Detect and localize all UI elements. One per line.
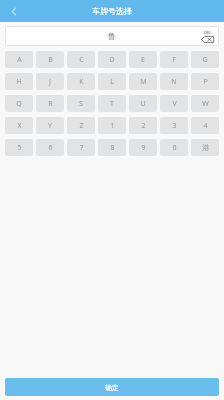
button[interactable]: W: [191, 95, 219, 112]
button[interactable]: Q: [5, 95, 33, 112]
button[interactable]: Delete: [198, 27, 216, 45]
button[interactable]: 6: [36, 139, 64, 156]
staticText: G: [202, 55, 208, 65]
staticText: 6: [48, 143, 53, 153]
staticText: 0: [172, 143, 177, 153]
button[interactable]: G: [191, 51, 219, 68]
staticText: 9: [141, 143, 146, 153]
staticText: C: [79, 55, 84, 65]
button[interactable]: 0: [160, 139, 188, 156]
button[interactable]: F: [160, 51, 188, 68]
staticText: W: [202, 99, 209, 109]
staticText: 7: [79, 143, 84, 153]
button[interactable]: T: [98, 95, 126, 112]
staticText: 1: [110, 121, 115, 131]
staticText: R: [48, 99, 53, 109]
staticText: 鲁: [108, 31, 116, 41]
button[interactable]: 3: [160, 117, 188, 134]
button[interactable]: J: [36, 73, 64, 90]
button[interactable]: S: [67, 95, 95, 112]
staticText: B: [48, 55, 53, 65]
staticText: A: [17, 55, 22, 65]
staticText: M: [140, 77, 147, 87]
button[interactable]: M: [129, 73, 157, 90]
staticText: 车牌号选择: [92, 6, 132, 16]
button[interactable]: D: [98, 51, 126, 68]
button[interactable]: E: [129, 51, 157, 68]
staticText: 4: [203, 121, 208, 131]
staticText: X: [17, 121, 22, 131]
staticText: Z: [79, 121, 84, 131]
staticText: T: [110, 99, 114, 109]
button[interactable]: 4: [191, 117, 219, 134]
staticText: 确定: [105, 383, 119, 392]
button[interactable]: 9: [129, 139, 157, 156]
staticText: DEL: [204, 30, 212, 35]
button[interactable]: U: [129, 95, 157, 112]
button[interactable]: V: [160, 95, 188, 112]
button[interactable]: 港: [191, 139, 219, 156]
staticText: 港: [202, 143, 209, 152]
staticText: K: [79, 77, 84, 87]
button[interactable]: P: [191, 73, 219, 90]
staticText: J: [49, 77, 51, 87]
button[interactable]: R: [36, 95, 64, 112]
staticText: N: [171, 77, 177, 87]
staticText: 8: [110, 143, 115, 153]
button[interactable]: 5: [5, 139, 33, 156]
staticText: H: [16, 77, 22, 87]
staticText: Y: [48, 121, 52, 131]
button[interactable]: K: [67, 73, 95, 90]
button[interactable]: Z: [67, 117, 95, 134]
staticText: S: [79, 99, 83, 109]
button[interactable]: H: [5, 73, 33, 90]
button[interactable]: 7: [67, 139, 95, 156]
staticText: D: [109, 55, 115, 65]
button[interactable]: L: [98, 73, 126, 90]
staticText: E: [141, 55, 145, 65]
staticText: 5: [17, 143, 22, 153]
button[interactable]: A: [5, 51, 33, 68]
button[interactable]: Y: [36, 117, 64, 134]
button[interactable]: C: [67, 51, 95, 68]
button[interactable]: 1: [98, 117, 126, 134]
staticText: 3: [172, 121, 177, 131]
button[interactable]: 2: [129, 117, 157, 134]
staticText: P: [203, 77, 208, 87]
staticText: Q: [16, 99, 22, 109]
button[interactable]: Back: [0, 0, 28, 22]
button[interactable]: N: [160, 73, 188, 90]
button[interactable]: X: [5, 117, 33, 134]
staticText: F: [172, 55, 176, 65]
staticText: 2: [141, 121, 146, 131]
staticText: L: [110, 77, 114, 87]
button[interactable]: B: [36, 51, 64, 68]
button[interactable]: 鲁: [5, 26, 219, 46]
staticText: V: [172, 99, 177, 109]
staticText: U: [140, 99, 146, 109]
button[interactable]: 8: [98, 139, 126, 156]
button[interactable]: 确定: [5, 378, 219, 396]
